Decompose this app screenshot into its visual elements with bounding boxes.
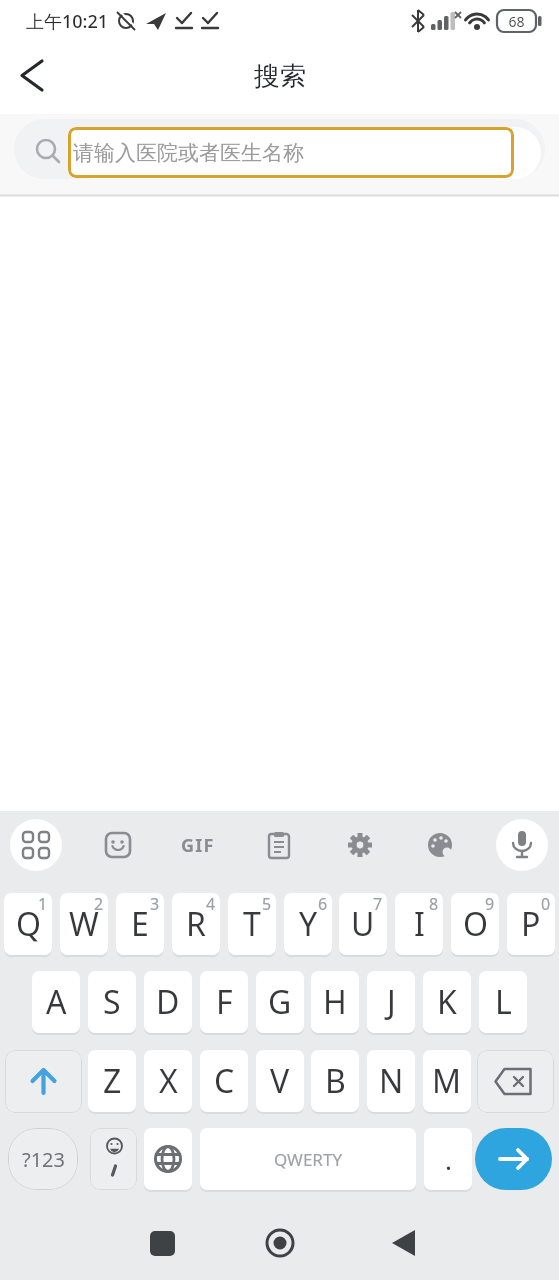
- button[interactable]: X: [144, 1050, 192, 1112]
- staticText: 0: [541, 893, 551, 915]
- staticText: W: [69, 902, 99, 946]
- staticText: A: [46, 980, 67, 1024]
- staticText: F: [216, 980, 233, 1024]
- staticText: U: [351, 902, 375, 946]
- staticText: S: [103, 980, 121, 1024]
- staticText: C: [214, 1059, 235, 1103]
- button[interactable]: [136, 1217, 188, 1269]
- staticText: Y: [299, 902, 318, 946]
- button[interactable]: I: [395, 893, 443, 955]
- button[interactable]: [5, 1050, 82, 1113]
- button[interactable]: QWERTY: [200, 1128, 416, 1190]
- button[interactable]: J: [367, 971, 415, 1033]
- button[interactable]: [496, 819, 548, 871]
- staticText: X: [159, 1059, 178, 1103]
- button[interactable]: A: [32, 971, 80, 1033]
- staticText: GIF: [181, 833, 215, 858]
- button[interactable]: S: [88, 971, 136, 1033]
- button[interactable]: [475, 1128, 552, 1190]
- staticText: 8: [429, 893, 439, 915]
- staticText: M: [432, 1059, 462, 1103]
- button[interactable]: T: [228, 893, 276, 955]
- button[interactable]: Y: [284, 893, 332, 955]
- button[interactable]: [266, 832, 292, 858]
- button[interactable]: G: [256, 971, 304, 1033]
- staticText: P: [521, 902, 541, 946]
- button[interactable]: Q: [4, 893, 52, 955]
- staticText: 9: [485, 893, 495, 915]
- button[interactable]: K: [423, 971, 471, 1033]
- button[interactable]: P: [507, 893, 555, 955]
- button[interactable]: R: [172, 893, 220, 955]
- staticText: 3: [150, 893, 160, 915]
- staticText: .: [445, 1142, 452, 1177]
- staticText: O: [463, 902, 488, 946]
- button[interactable]: D: [144, 971, 192, 1033]
- button[interactable]: [14, 119, 545, 179]
- staticText: QWERTY: [274, 1148, 343, 1171]
- button[interactable]: [90, 1128, 137, 1190]
- button[interactable]: .: [424, 1128, 472, 1190]
- staticText: R: [186, 902, 206, 946]
- button[interactable]: F: [200, 971, 248, 1033]
- staticText: V: [270, 1059, 290, 1103]
- staticText: 7: [373, 893, 383, 915]
- staticText: 68: [508, 12, 525, 31]
- button[interactable]: O: [451, 893, 499, 955]
- button[interactable]: [8, 56, 56, 96]
- staticText: 5: [262, 893, 272, 915]
- button[interactable]: E: [116, 893, 164, 955]
- button[interactable]: B: [311, 1050, 359, 1112]
- button[interactable]: [10, 819, 62, 871]
- staticText: L: [495, 980, 512, 1024]
- button[interactable]: [427, 832, 453, 858]
- button[interactable]: [378, 1217, 430, 1269]
- staticText: 上午10:21: [26, 9, 109, 34]
- button[interactable]: C: [200, 1050, 248, 1112]
- button[interactable]: W: [60, 893, 108, 955]
- button[interactable]: [144, 1128, 192, 1190]
- button[interactable]: V: [256, 1050, 304, 1112]
- button[interactable]: [105, 832, 131, 858]
- staticText: B: [325, 1059, 346, 1103]
- staticText: D: [156, 980, 180, 1024]
- staticText: E: [131, 902, 149, 946]
- staticText: 2: [94, 893, 104, 915]
- button[interactable]: ?123: [8, 1128, 78, 1190]
- button[interactable]: U: [339, 893, 387, 955]
- button[interactable]: Z: [88, 1050, 136, 1112]
- button[interactable]: GIF: [172, 831, 224, 859]
- staticText: G: [268, 980, 292, 1024]
- staticText: I: [414, 902, 425, 946]
- staticText: 搜索: [254, 60, 306, 93]
- button[interactable]: H: [311, 971, 359, 1033]
- staticText: 4: [206, 893, 216, 915]
- staticText: Q: [16, 902, 41, 946]
- staticText: 1: [38, 893, 48, 915]
- staticText: ?123: [22, 1146, 65, 1173]
- button[interactable]: [477, 1050, 554, 1113]
- staticText: T: [243, 902, 261, 946]
- button[interactable]: L: [479, 971, 527, 1033]
- staticText: N: [379, 1059, 404, 1103]
- staticText: Z: [103, 1059, 122, 1103]
- button[interactable]: N: [367, 1050, 415, 1112]
- button[interactable]: [347, 832, 373, 858]
- staticText: H: [323, 980, 347, 1024]
- staticText: J: [387, 980, 396, 1024]
- staticText: K: [437, 980, 457, 1024]
- button[interactable]: M: [423, 1050, 471, 1112]
- button[interactable]: [254, 1217, 306, 1269]
- staticText: 6: [318, 893, 328, 915]
- staticText: 请输入医院或者医生名称: [73, 140, 304, 166]
